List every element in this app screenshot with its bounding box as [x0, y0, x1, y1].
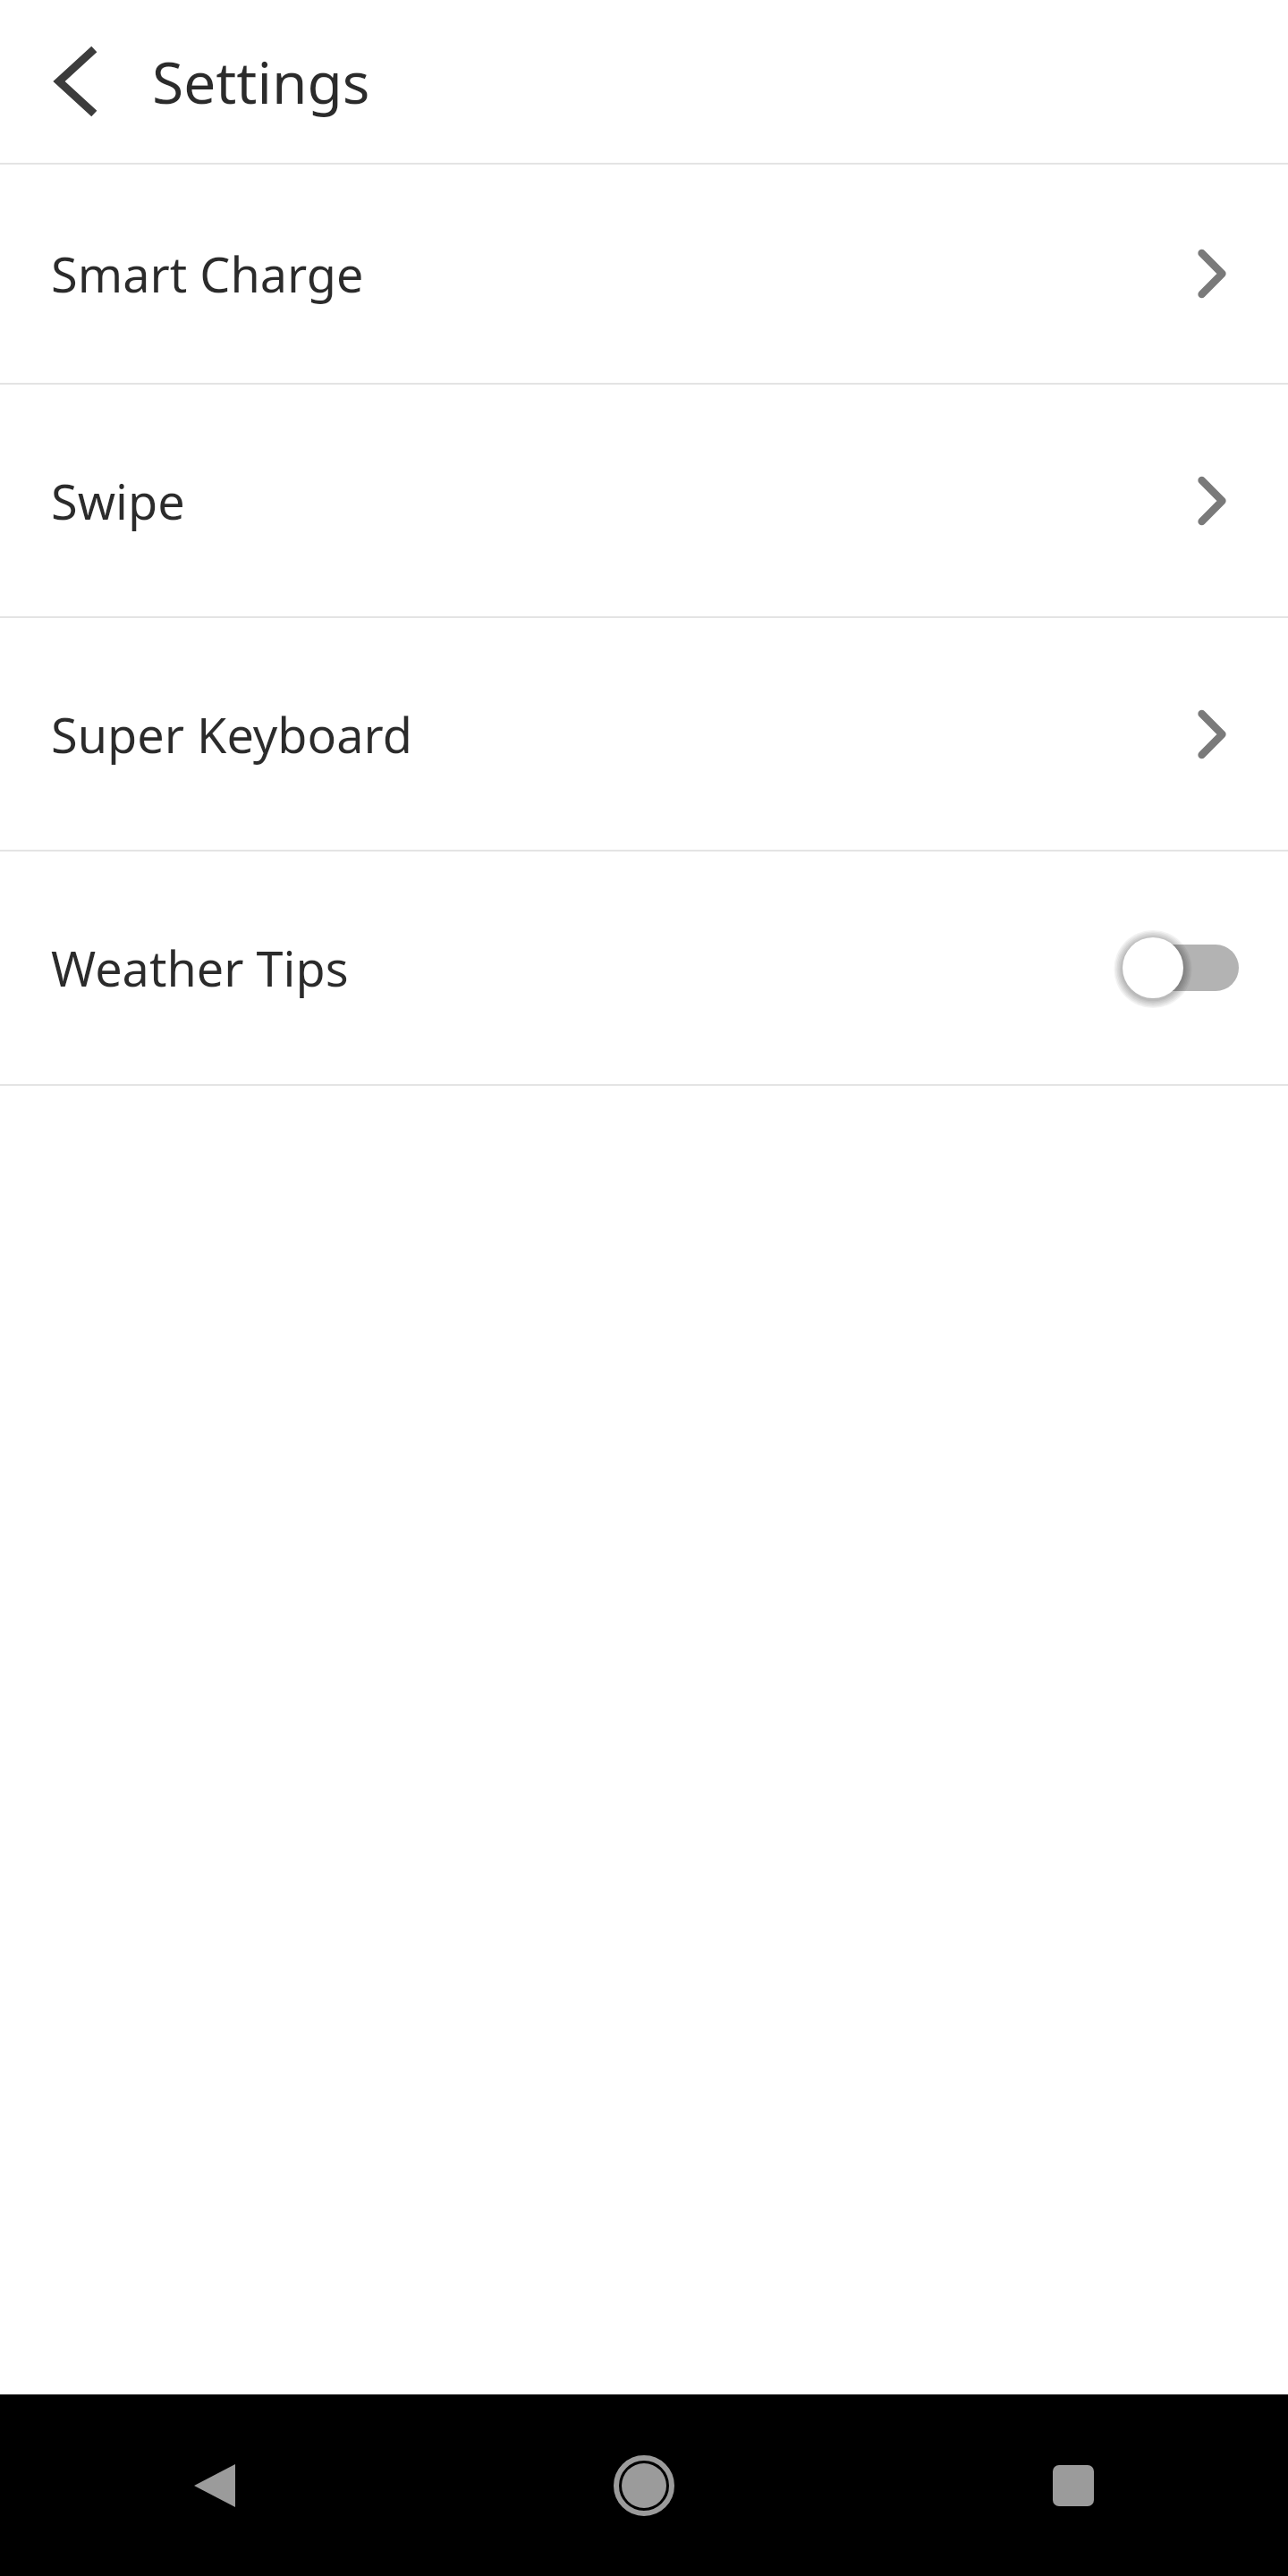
other: Open — [1185, 247, 1239, 301]
button[interactable]: Super Keyboard — [0, 618, 1288, 850]
staticText: Settings — [152, 43, 370, 121]
button[interactable]: Recent apps — [859, 2394, 1288, 2576]
button[interactable]: Weather Tips — [0, 852, 1288, 1084]
button[interactable]: Back — [30, 37, 120, 126]
button[interactable]: Swipe — [0, 385, 1288, 616]
button[interactable]: Weather Tips toggle — [1119, 934, 1239, 1002]
other: Open — [1185, 474, 1239, 528]
button[interactable]: Smart Charge — [0, 165, 1288, 383]
other: Open — [1185, 708, 1239, 761]
staticText: Smart Charge — [51, 241, 364, 307]
button[interactable]: Home — [429, 2394, 859, 2576]
staticText: Weather Tips — [51, 935, 349, 1001]
button[interactable]: Back — [0, 2394, 429, 2576]
staticText: Swipe — [51, 468, 185, 534]
staticText: Super Keyboard — [51, 701, 412, 767]
